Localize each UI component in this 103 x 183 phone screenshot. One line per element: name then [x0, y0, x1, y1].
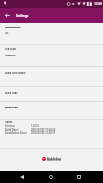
staticText: Log Level	[5, 46, 17, 49]
button[interactable]	[0, 23, 103, 44]
staticText: off	[5, 32, 9, 35]
button[interactable]: Recent apps	[73, 171, 85, 183]
staticText: 12:58	[94, 2, 103, 6]
button[interactable]: Home	[45, 171, 57, 183]
staticText: Notifications	[5, 25, 21, 28]
staticText: MobileIron	[47, 158, 62, 162]
staticText: Show VPN Profile	[5, 70, 26, 73]
staticText: Email Logs	[5, 105, 18, 108]
staticText: About	[5, 119, 13, 122]
button[interactable]	[0, 101, 103, 119]
button[interactable]: Navigate up	[1, 9, 14, 22]
staticText: Email Logs	[5, 105, 18, 108]
staticText: Installation Date:	[5, 131, 27, 134]
staticText: VERBOSE	[5, 54, 16, 57]
staticText: Show Logs	[5, 90, 18, 93]
staticText: 1.0.0.9	[31, 124, 39, 127]
staticText: 2016/07/03 11:20:19	[31, 131, 56, 134]
staticText: Show Logs	[5, 91, 18, 94]
staticText: off	[5, 31, 9, 34]
staticText: Settings	[16, 14, 29, 18]
staticText: Show VPN Profile	[5, 71, 26, 74]
button[interactable]	[0, 66, 103, 86]
button[interactable]: Back	[16, 171, 28, 183]
button[interactable]	[0, 86, 103, 101]
staticText: Build Date:	[5, 128, 19, 131]
staticText: 2016/07/03 11:20:26	[31, 128, 56, 131]
staticText: Notifications	[5, 25, 21, 28]
staticText: MobileIron	[47, 157, 62, 161]
staticText: Version:	[5, 124, 16, 127]
staticText: About	[5, 120, 13, 123]
staticText: VERBOSE	[5, 54, 16, 57]
staticText: Log Level	[5, 47, 17, 50]
button[interactable]	[0, 44, 103, 66]
